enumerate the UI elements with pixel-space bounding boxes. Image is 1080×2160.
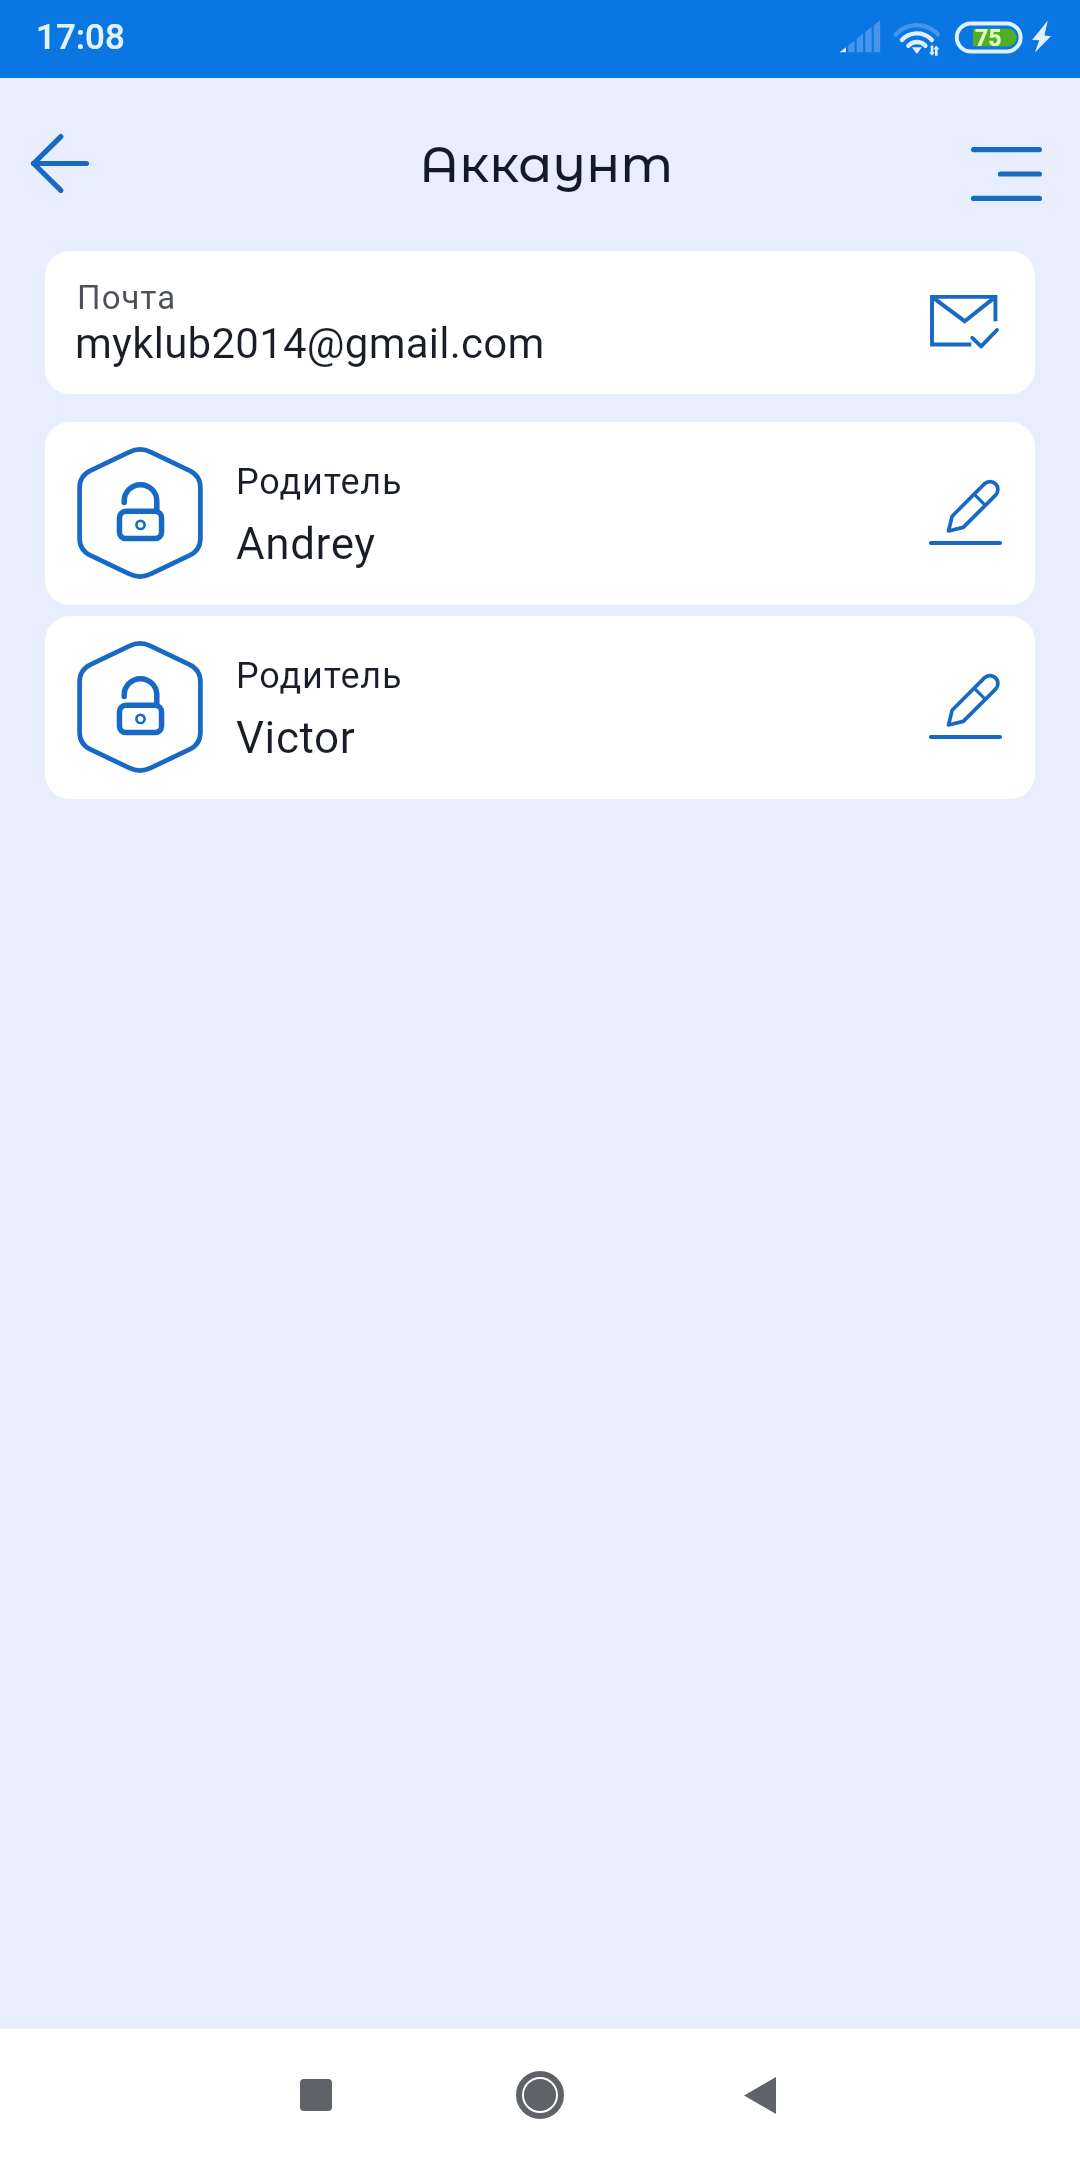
staticText: Родитель bbox=[236, 461, 403, 503]
button[interactable]: Back bbox=[10, 113, 110, 213]
button[interactable]: Back bbox=[712, 2047, 808, 2143]
staticText: myklub2014@gmail.com bbox=[75, 319, 545, 368]
staticText: Andrey bbox=[236, 518, 376, 570]
button[interactable]: Email verified bbox=[917, 274, 1011, 368]
button[interactable]: Recent apps bbox=[268, 2047, 364, 2143]
button[interactable]: Menu bbox=[956, 124, 1056, 224]
button[interactable]: Edit bbox=[914, 465, 1016, 561]
staticText: 75 bbox=[975, 25, 1002, 52]
button[interactable]: Account lock bbox=[74, 442, 206, 584]
staticText: Родитель bbox=[236, 655, 403, 697]
button[interactable]: Account lock bbox=[45, 616, 1035, 799]
button[interactable]: Account lock bbox=[74, 636, 206, 778]
button[interactable]: Почта bbox=[45, 251, 1035, 394]
button[interactable]: Edit bbox=[914, 659, 1016, 755]
button[interactable]: Account lock bbox=[45, 422, 1035, 605]
staticText: Аккаунт bbox=[419, 134, 673, 195]
staticText: Victor bbox=[236, 712, 356, 764]
staticText: 17:08 bbox=[36, 17, 125, 58]
staticText: Почта bbox=[77, 278, 177, 317]
button[interactable]: Home bbox=[492, 2047, 588, 2143]
